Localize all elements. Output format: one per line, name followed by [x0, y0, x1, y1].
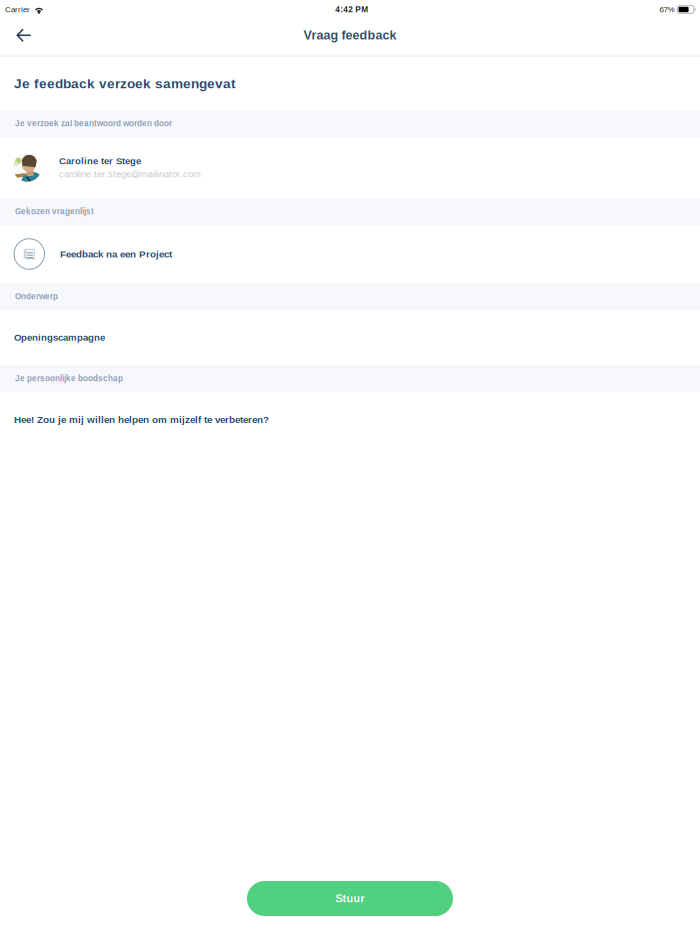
staticText: caroline.ter.stege@mailinator.com: [59, 169, 201, 179]
staticText: Stuur: [335, 892, 364, 904]
staticText: Vraag feedback: [303, 28, 396, 42]
button[interactable]: Feedback na een Project: [0, 225, 700, 283]
staticText: Hee! Zou je mij willen helpen om mijzelf…: [14, 414, 269, 425]
staticText: Caroline ter Stege: [59, 156, 141, 166]
button[interactable]: Caroline ter Stege: [0, 137, 700, 198]
button[interactable]: Stuur: [247, 881, 453, 916]
staticText: Gekozen vragenlijst: [15, 207, 94, 216]
staticText: Onderwerp: [15, 292, 58, 301]
staticText: Openingscampagne: [14, 332, 105, 343]
staticText: 67%: [659, 5, 674, 14]
button[interactable]: Back: [0, 20, 45, 54]
staticText: Feedback na een Project: [60, 248, 172, 259]
staticText: Carrier: [5, 5, 30, 14]
staticText: 4:42 PM: [335, 5, 368, 14]
staticText: Je feedback verzoek samengevat: [14, 76, 236, 91]
staticText: Je persoonlijke boodschap: [15, 374, 123, 383]
staticText: Je verzoek zal beantwoord worden door: [15, 119, 172, 128]
